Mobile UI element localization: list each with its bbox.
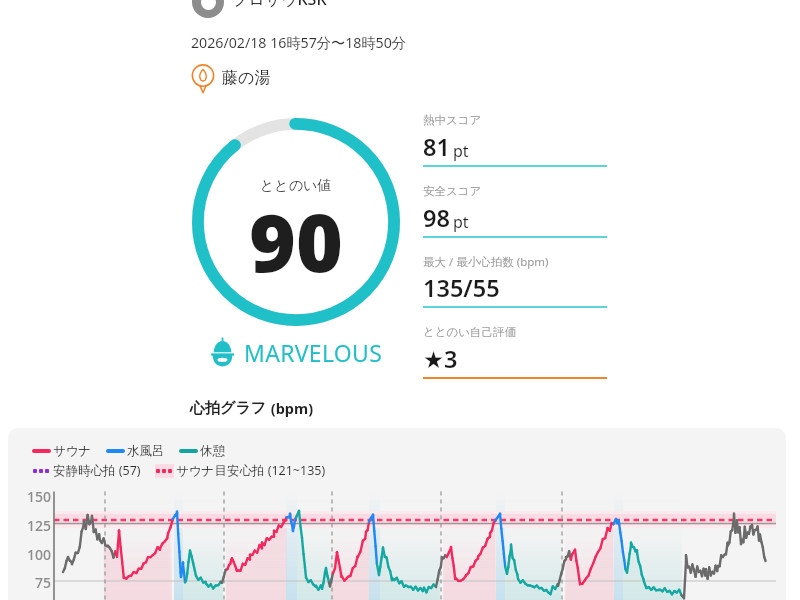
staticText: サウナ xyxy=(53,443,92,459)
staticText: 75 xyxy=(35,573,52,592)
staticText: ととのい自己評価 xyxy=(423,325,517,339)
button[interactable]: ととのい自己評価 xyxy=(423,324,607,382)
button[interactable]: User avatar xyxy=(192,0,224,18)
staticText: 最大 / 最小心拍数 (bpm) xyxy=(423,254,549,270)
button[interactable]: MARVELOUS xyxy=(210,336,383,367)
staticText: 100 xyxy=(27,545,52,564)
button[interactable]: 安全スコア xyxy=(423,183,607,241)
staticText: MARVELOUS xyxy=(244,337,383,368)
staticText: 藤の湯 xyxy=(222,68,271,88)
staticText: ★3 xyxy=(423,343,458,375)
staticText: 安全スコア xyxy=(423,184,482,198)
staticText: 150 xyxy=(27,487,52,506)
button[interactable]: プロサウKSK xyxy=(232,0,327,10)
staticText: ととのい値 xyxy=(260,177,332,195)
staticText: pt xyxy=(453,140,469,162)
staticText: 休憩 xyxy=(200,443,225,459)
button[interactable]: 最大 / 最小心拍数 (bpm) xyxy=(423,253,607,311)
staticText: サウナ目安心拍 (121~135) xyxy=(176,462,326,479)
staticText: 135/55 xyxy=(423,272,500,304)
staticText: 安静時心拍 (57) xyxy=(53,462,141,479)
staticText: 心拍グラフ xyxy=(190,399,267,418)
staticText: 水風呂 xyxy=(127,443,165,459)
button[interactable]: 熱中スコア xyxy=(423,112,607,170)
staticText: (bpm) xyxy=(267,398,314,418)
staticText: pt xyxy=(453,211,469,233)
staticText: 2026/02/18 16時57分〜18時50分 xyxy=(191,33,407,52)
staticText: 81 xyxy=(423,131,450,163)
button[interactable]: 藤の湯 xyxy=(188,64,271,94)
staticText: 90 xyxy=(249,186,343,295)
staticText: 熱中スコア xyxy=(423,113,482,127)
staticText: 98 xyxy=(423,202,450,234)
staticText: 125 xyxy=(27,516,52,535)
